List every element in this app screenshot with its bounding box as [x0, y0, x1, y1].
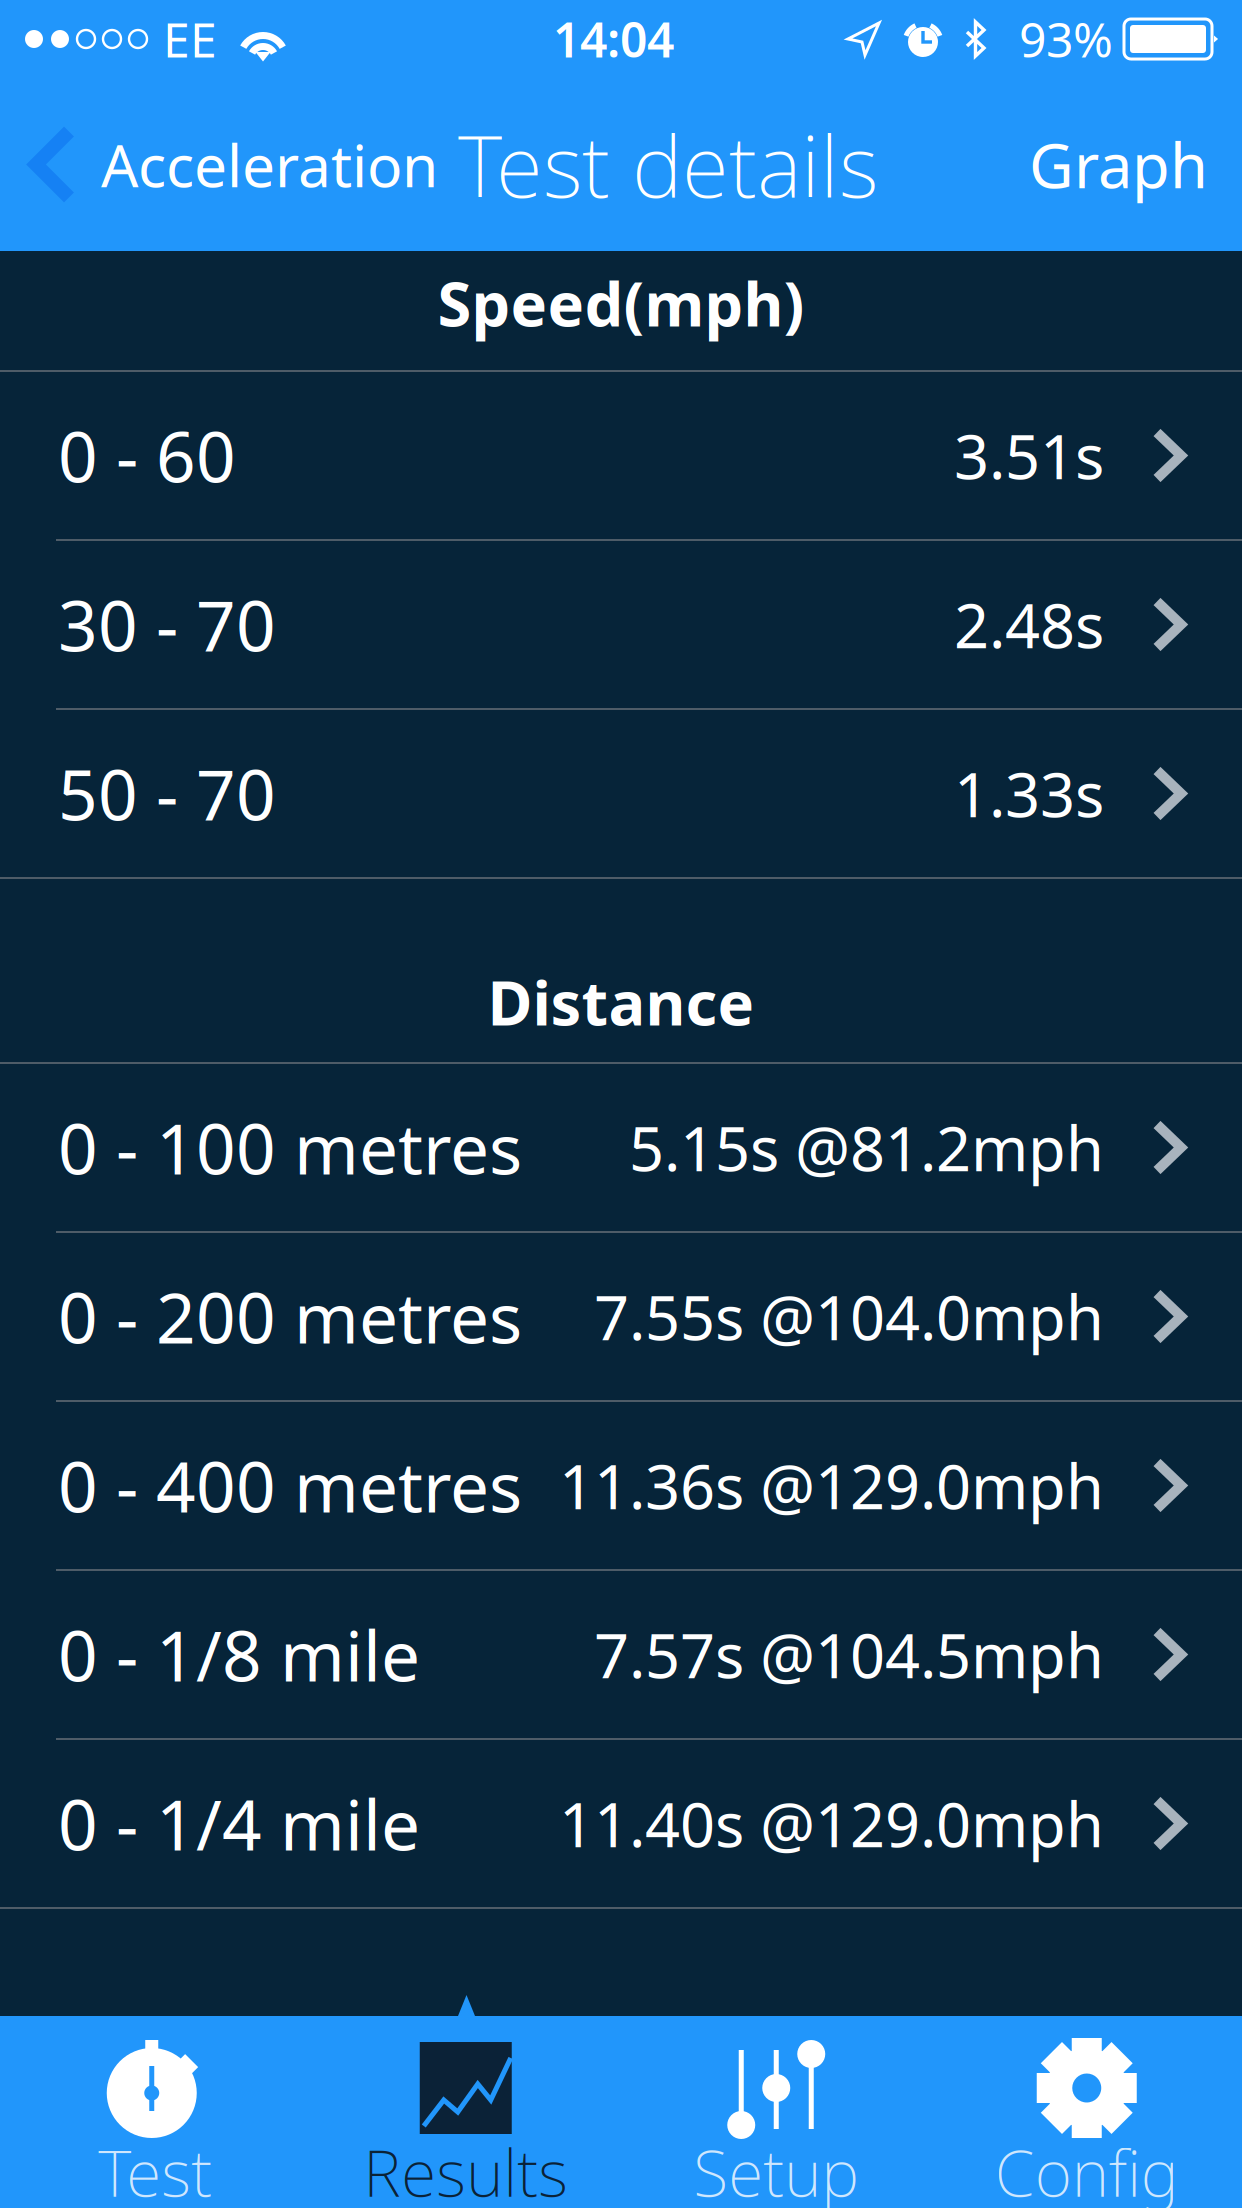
staticText: 0 - 1/8 mile — [58, 1608, 420, 1701]
button[interactable]: Back to Acceleration — [0, 111, 438, 217]
button[interactable]: 0 - 1/8 mile — [0, 1571, 1242, 1738]
staticText: 0 - 200 metres — [58, 1270, 522, 1363]
staticText: 7.57s @104.5mph — [594, 1614, 1104, 1695]
button[interactable]: 0 - 1/4 mile — [0, 1740, 1242, 1907]
staticText: 93% — [1019, 7, 1113, 71]
staticText: 0 - 60 — [58, 409, 236, 502]
staticText: 0 - 100 metres — [58, 1101, 522, 1194]
staticText: Distance — [487, 961, 754, 1042]
staticText: 30 - 70 — [58, 578, 276, 671]
staticText: Test details — [458, 108, 878, 221]
staticText: 3.51s — [954, 415, 1104, 496]
staticText: 11.40s @129.0mph — [559, 1783, 1104, 1864]
button[interactable]: 30 - 70 — [0, 541, 1242, 708]
button[interactable]: 50 - 70 — [0, 710, 1242, 877]
button[interactable]: Results — [310, 2016, 621, 2208]
staticText: Graph — [1029, 124, 1208, 205]
staticText: Results — [363, 2129, 568, 2208]
staticText: 0 - 400 metres — [58, 1439, 522, 1532]
button[interactable]: Setup — [621, 2016, 931, 2208]
staticText: 5.15s @81.2mph — [629, 1107, 1104, 1188]
staticText: 0 - 1/4 mile — [58, 1777, 420, 1870]
button[interactable]: Config — [931, 2016, 1242, 2208]
button[interactable]: 0 - 400 metres — [0, 1402, 1242, 1569]
staticText: Acceleration — [101, 125, 438, 203]
staticText: 14:04 — [553, 7, 674, 71]
staticText: 50 - 70 — [58, 747, 276, 840]
button[interactable]: Test — [0, 2016, 310, 2208]
staticText: Setup — [693, 2129, 859, 2208]
staticText: 2.48s — [954, 584, 1104, 665]
button[interactable]: 0 - 200 metres — [0, 1233, 1242, 1400]
staticText: EE — [163, 7, 217, 71]
button[interactable]: 0 - 100 metres — [0, 1064, 1242, 1231]
staticText: Test — [98, 2129, 212, 2208]
button[interactable]: 0 - 60 — [0, 372, 1242, 539]
staticText: Speed(mph) — [437, 262, 804, 343]
button[interactable]: Graph — [1029, 110, 1242, 219]
staticText: 11.36s @129.0mph — [559, 1445, 1104, 1526]
staticText: Config — [995, 2129, 1179, 2208]
staticText: 1.33s — [954, 753, 1104, 834]
staticText: 7.55s @104.0mph — [594, 1276, 1104, 1357]
